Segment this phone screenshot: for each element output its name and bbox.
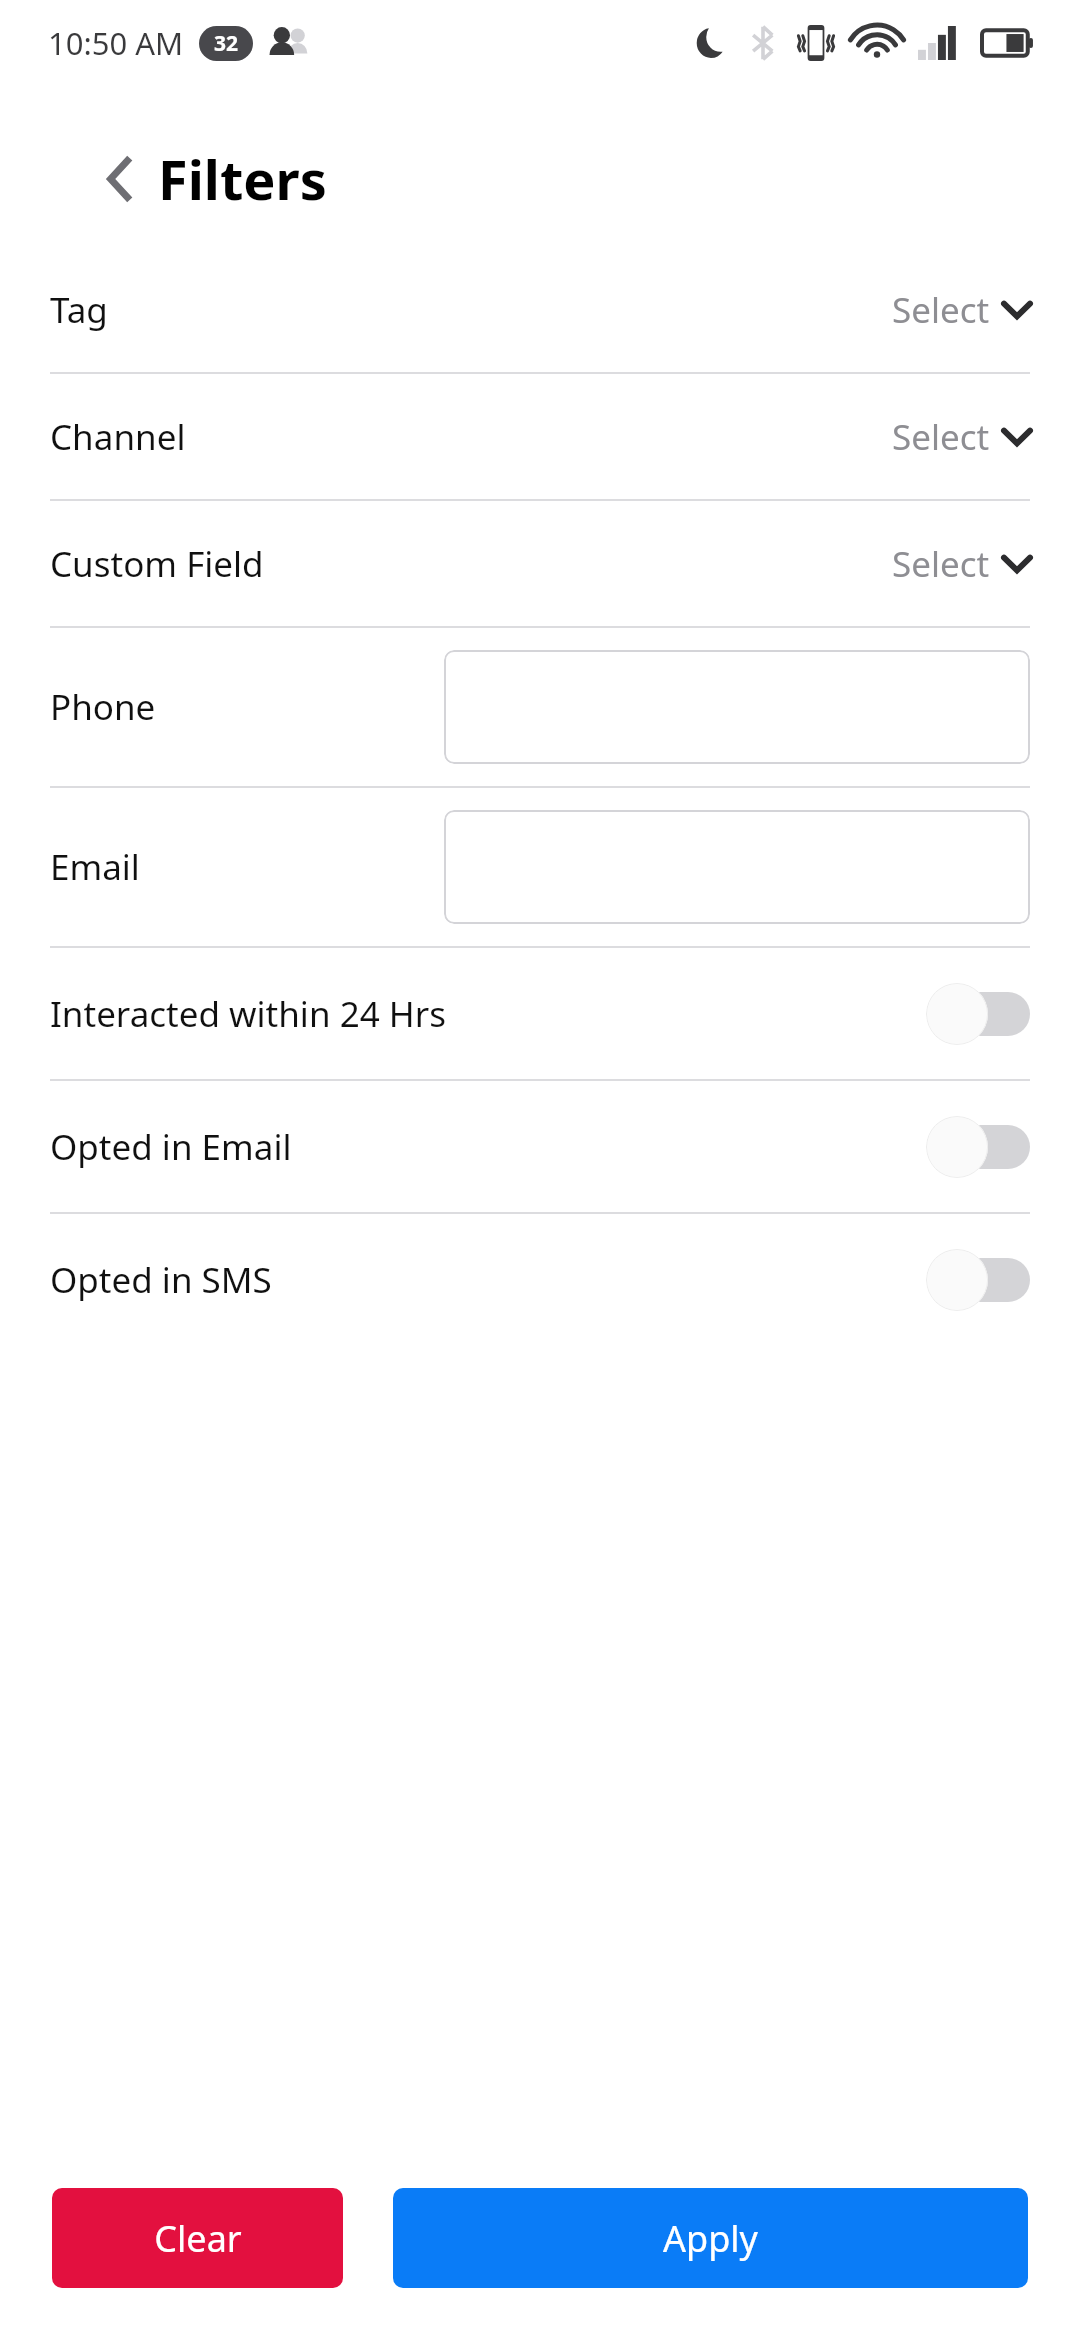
staticText: Email xyxy=(50,843,140,891)
staticText: Clear xyxy=(154,2214,242,2263)
button[interactable]: Phone xyxy=(444,650,1030,764)
staticText: Phone xyxy=(50,683,156,731)
button[interactable]: Opted in Email xyxy=(0,1081,1080,1212)
staticText: 32 xyxy=(214,29,239,58)
staticText: Select xyxy=(892,413,990,461)
button[interactable]: Custom Field xyxy=(0,501,1080,626)
button[interactable]: Email xyxy=(444,810,1030,924)
staticText: Opted in SMS xyxy=(50,1256,272,1304)
button[interactable]: Clear xyxy=(52,2188,343,2288)
staticText: Channel xyxy=(50,413,186,461)
staticText: Apply xyxy=(663,2214,758,2263)
staticText: Filters xyxy=(158,142,327,216)
button[interactable]: Opted in SMS xyxy=(0,1214,1080,1345)
staticText: Select xyxy=(892,540,990,588)
button[interactable]: Tag xyxy=(0,247,1080,372)
button[interactable]: Back xyxy=(88,148,150,210)
staticText: Select xyxy=(892,286,990,334)
button[interactable]: Channel xyxy=(0,374,1080,499)
staticText: Interacted within 24 Hrs xyxy=(50,990,446,1038)
staticText: Opted in Email xyxy=(50,1123,292,1171)
button[interactable]: Apply xyxy=(393,2188,1028,2288)
button[interactable]: Interacted within 24 Hrs xyxy=(0,948,1080,1079)
staticText: 10:50 AM xyxy=(48,22,184,64)
staticText: Custom Field xyxy=(50,540,264,588)
staticText: Tag xyxy=(50,286,108,334)
